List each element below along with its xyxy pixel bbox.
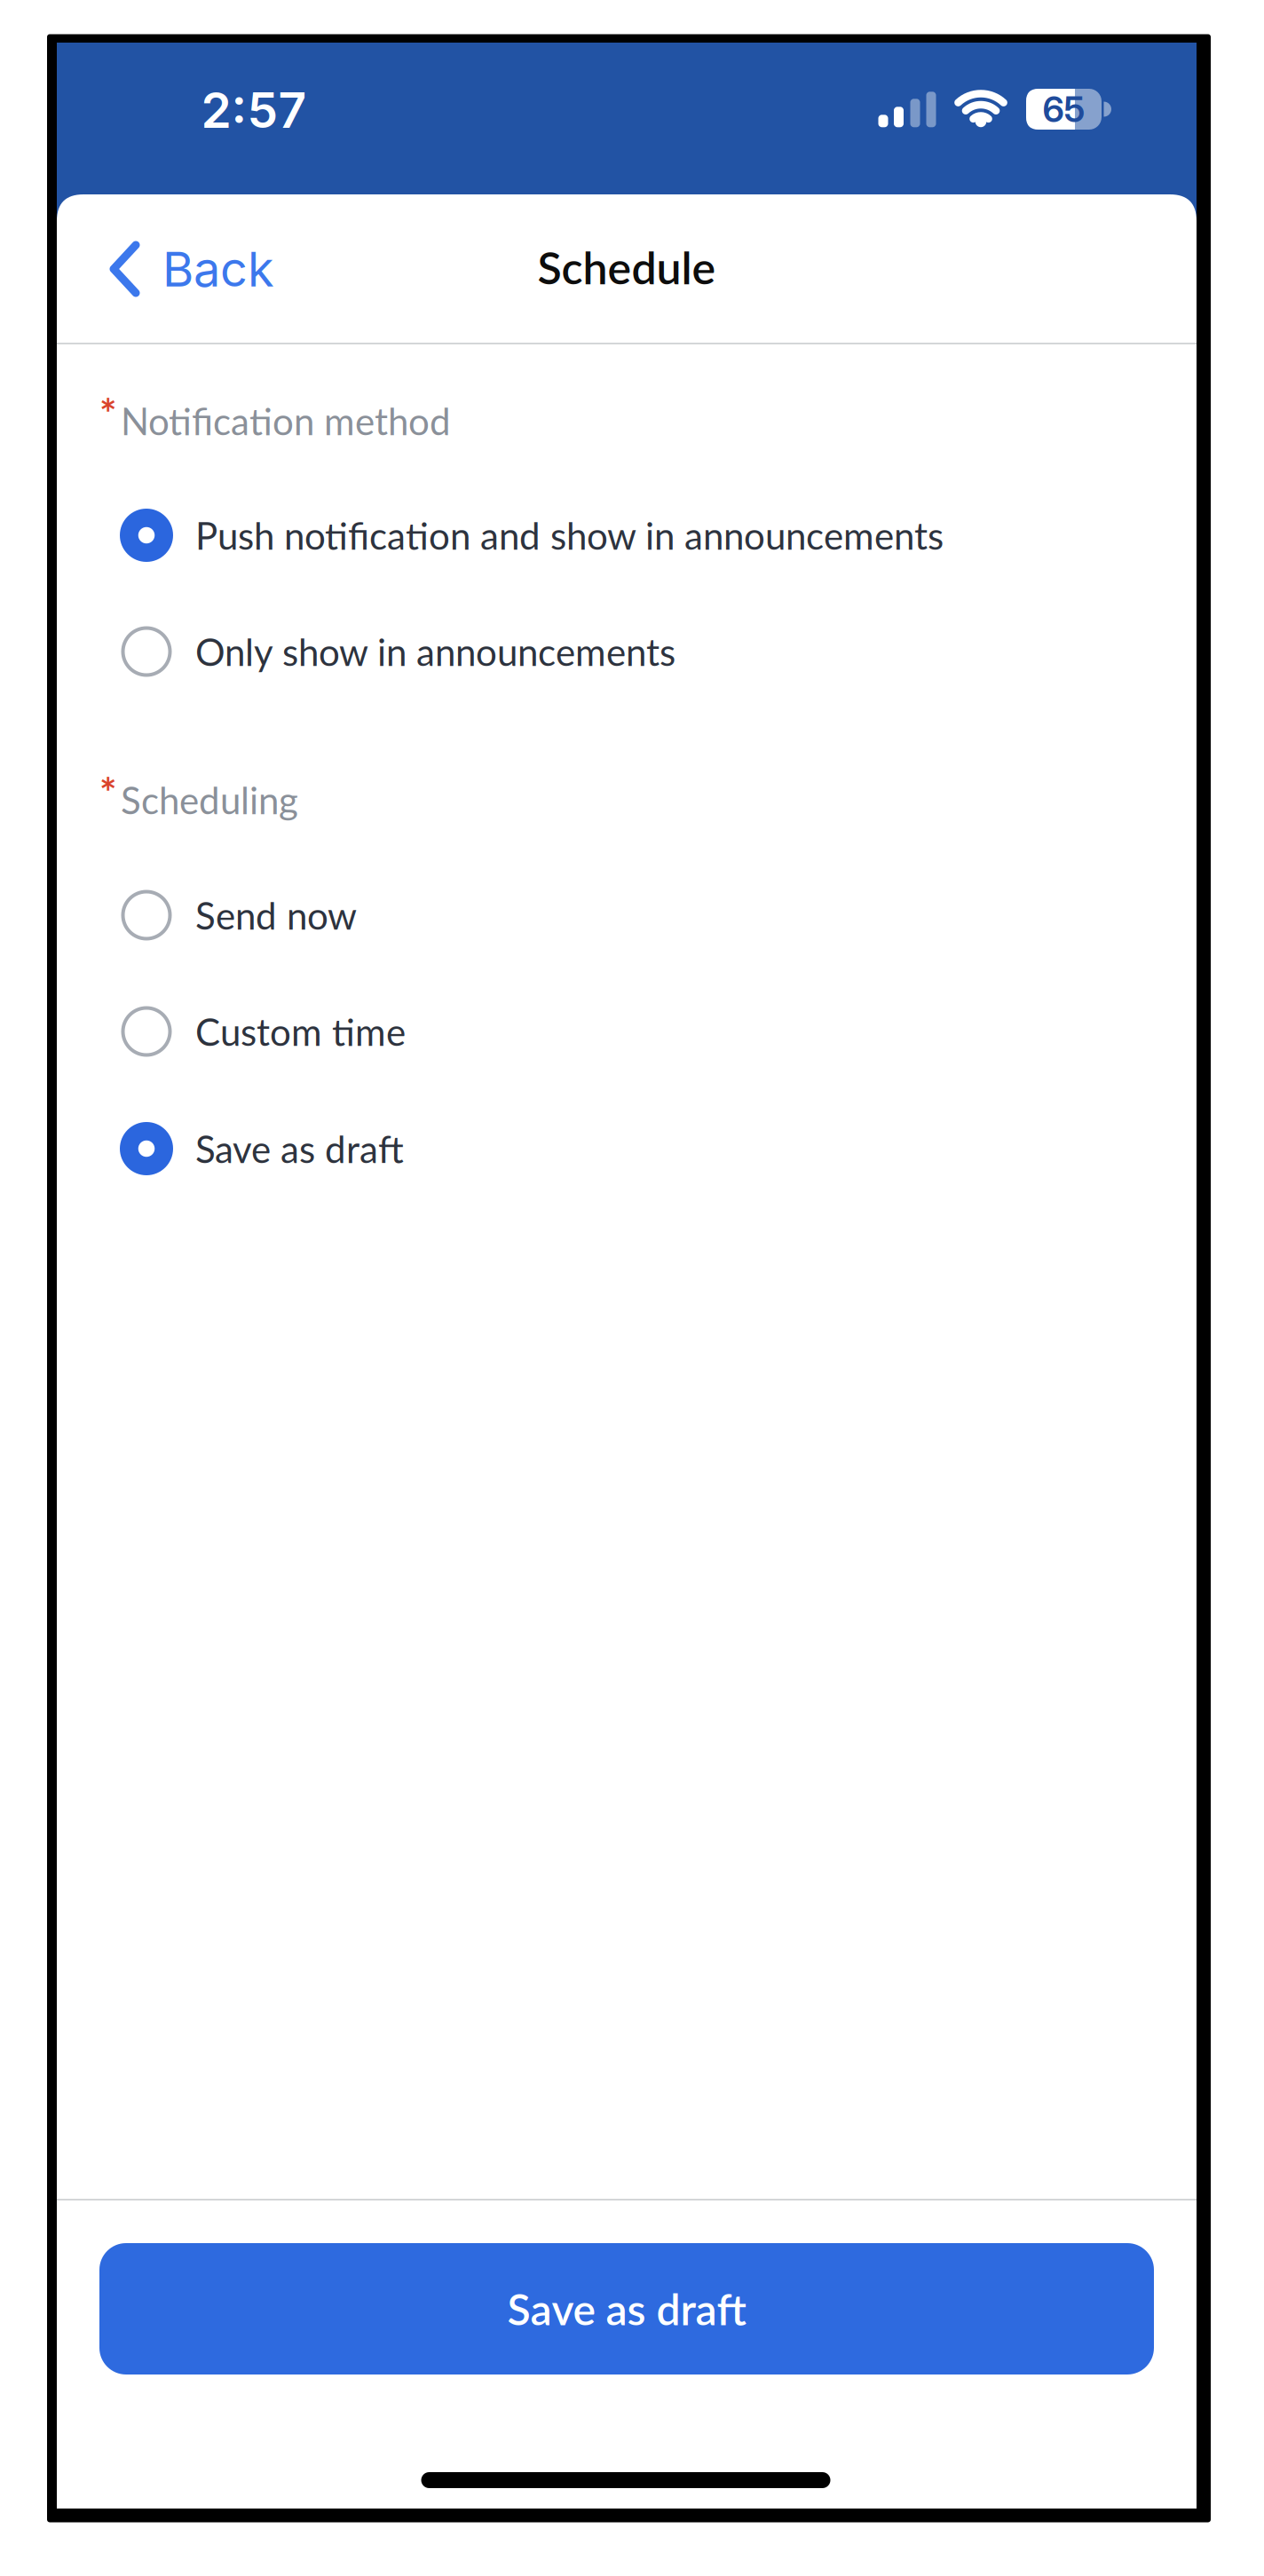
staticText: Scheduling bbox=[121, 777, 298, 822]
staticText: * bbox=[99, 388, 117, 437]
button[interactable]: Custom time bbox=[120, 982, 1181, 1081]
staticText: Schedule bbox=[537, 241, 716, 294]
staticText: Notification method bbox=[121, 398, 451, 443]
staticText: Send now bbox=[195, 893, 357, 938]
button[interactable]: Save as draft bbox=[99, 2243, 1154, 2375]
staticText: Back bbox=[162, 240, 274, 298]
staticText: Save as draft bbox=[195, 1126, 404, 1171]
staticText: * bbox=[99, 767, 117, 816]
staticText: 2:57 bbox=[201, 81, 307, 140]
staticText: Only show in announcements bbox=[195, 629, 675, 674]
button[interactable]: Push notification and show in announceme… bbox=[120, 486, 1181, 585]
staticText: Custom time bbox=[195, 1009, 406, 1054]
staticText: 65 bbox=[1043, 88, 1085, 131]
button[interactable]: Save as draft bbox=[120, 1099, 1181, 1198]
staticText: Save as draft bbox=[507, 2283, 746, 2334]
staticText: Push notification and show in announceme… bbox=[195, 513, 944, 558]
button[interactable]: Only show in announcements bbox=[120, 602, 1181, 701]
button[interactable]: Send now bbox=[120, 865, 1181, 965]
button[interactable]: Back bbox=[109, 232, 274, 306]
